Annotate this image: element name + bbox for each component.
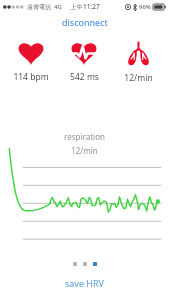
staticText: 96% <box>139 3 151 11</box>
button[interactable]: Heart rate 114 bpm <box>4 40 57 85</box>
button[interactable]: Page 2 <box>83 262 87 266</box>
staticText: disconnect <box>62 16 108 28</box>
staticText: 542 ms <box>70 71 99 83</box>
button[interactable]: Respiration 12 per minute <box>111 40 165 86</box>
button[interactable]: Heart rate variability 542 milliseconds <box>57 40 111 85</box>
button[interactable]: Page 3 <box>93 262 97 266</box>
staticText: respiration <box>64 131 105 142</box>
button[interactable]: Page 1 <box>73 262 77 266</box>
staticText: 12/min <box>71 145 98 156</box>
staticText: 4G <box>54 3 62 11</box>
staticText: 上午11:27 <box>70 2 100 11</box>
staticText: 遠傳電信 <box>27 3 51 11</box>
staticText: 114 bpm <box>13 71 49 83</box>
staticText: 12/min <box>124 72 153 84</box>
button[interactable]: save HRV <box>55 273 115 293</box>
staticText: save HRV <box>65 277 105 289</box>
button[interactable]: disconnect <box>54 13 116 31</box>
